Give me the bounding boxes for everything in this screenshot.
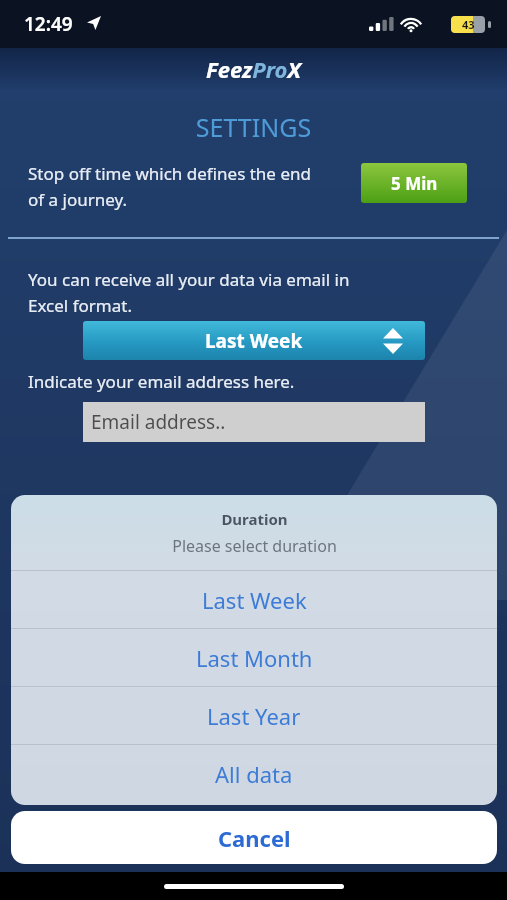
staticText: Email address.. <box>91 409 226 435</box>
button[interactable]: Last Month <box>11 629 497 686</box>
button[interactable]: Last Week <box>83 321 425 360</box>
staticText: Last Year <box>207 701 301 731</box>
staticText: Stop off time which defines the end of a… <box>28 162 353 211</box>
button[interactable]: All data <box>11 745 497 802</box>
other: Change duration <box>383 328 403 354</box>
staticText: Last Week <box>202 585 307 615</box>
staticText: 5 Min <box>391 172 438 195</box>
staticText: Last Week <box>205 328 303 354</box>
other: Home indicator <box>164 884 344 889</box>
staticText: All data <box>215 759 293 789</box>
button[interactable]: Cancel <box>11 811 497 864</box>
staticText: Indicate your email address here. <box>28 370 295 393</box>
button[interactable]: Last Year <box>11 687 497 744</box>
staticText: Please select duration <box>172 535 337 557</box>
staticText: SETTINGS <box>0 110 507 144</box>
staticText: Last Month <box>196 643 313 673</box>
staticText: 12:49 <box>24 11 73 37</box>
button[interactable]: Last Week <box>11 571 497 628</box>
staticText: You can receive all your data via email … <box>28 268 438 317</box>
staticText: Duration <box>221 509 288 529</box>
staticText: FeezProX <box>206 54 301 84</box>
button[interactable]: Email address.. <box>83 402 425 442</box>
staticText: 43 <box>462 17 475 32</box>
button[interactable]: 5 Min <box>361 163 467 203</box>
staticText: Cancel <box>218 823 291 853</box>
